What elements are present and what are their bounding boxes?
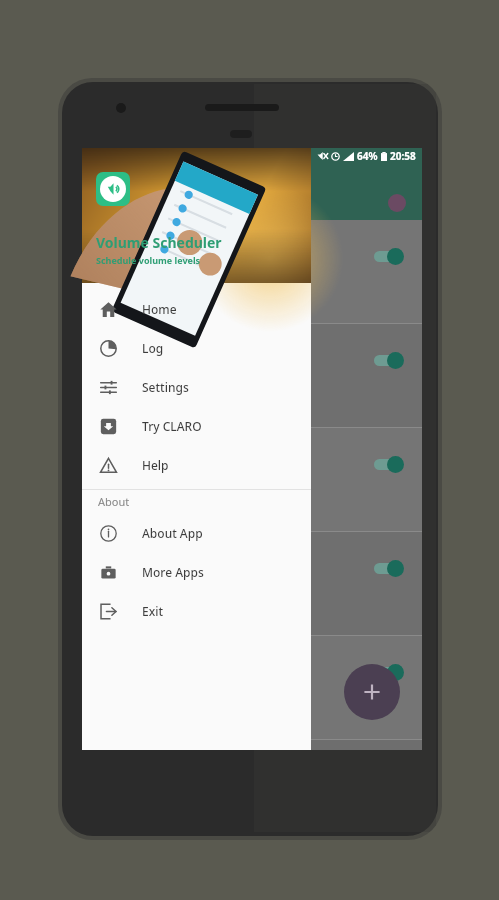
staticText: About App xyxy=(142,525,203,541)
staticText: Settings xyxy=(142,379,189,395)
staticText: 20:58 xyxy=(390,149,416,163)
button[interactable]: Log xyxy=(82,328,311,367)
button[interactable]: Add schedule xyxy=(344,664,400,720)
staticText: Schedule volume levels xyxy=(96,254,201,266)
button[interactable]: Schedule xyxy=(82,532,422,636)
staticText: Schedule xyxy=(98,247,370,265)
button[interactable]: More Apps xyxy=(82,552,311,591)
staticText: Schedule xyxy=(98,455,370,473)
staticText: Try CLARO xyxy=(142,418,202,434)
button[interactable]: Exit xyxy=(82,591,311,630)
staticText: More Apps xyxy=(142,564,204,580)
button[interactable]: About App xyxy=(82,513,311,552)
button[interactable]: Schedule xyxy=(82,220,422,324)
staticText: Exit xyxy=(142,603,164,619)
button[interactable]: Home xyxy=(82,289,311,328)
staticText: Every day xyxy=(98,613,143,627)
staticText: Log xyxy=(142,340,164,356)
button[interactable]: Settings xyxy=(82,367,311,406)
staticText: Help xyxy=(142,457,169,473)
staticText: Volume Scheduler xyxy=(96,233,222,252)
staticText: About xyxy=(98,494,130,509)
button[interactable]: SCHEDULE xyxy=(82,324,422,428)
button[interactable]: Try CLARO xyxy=(82,406,311,445)
staticText: Every day xyxy=(98,405,143,419)
staticText: Schedule xyxy=(98,663,370,681)
staticText: Every day xyxy=(98,301,143,315)
button[interactable]: Schedule xyxy=(82,636,422,740)
staticText: Home xyxy=(142,301,177,317)
button[interactable]: Schedule xyxy=(82,428,422,532)
button[interactable]: Help xyxy=(82,445,311,484)
staticText: Schedule xyxy=(98,559,370,577)
staticText: SCHEDULE xyxy=(98,351,370,369)
staticText: 64% xyxy=(357,149,378,163)
